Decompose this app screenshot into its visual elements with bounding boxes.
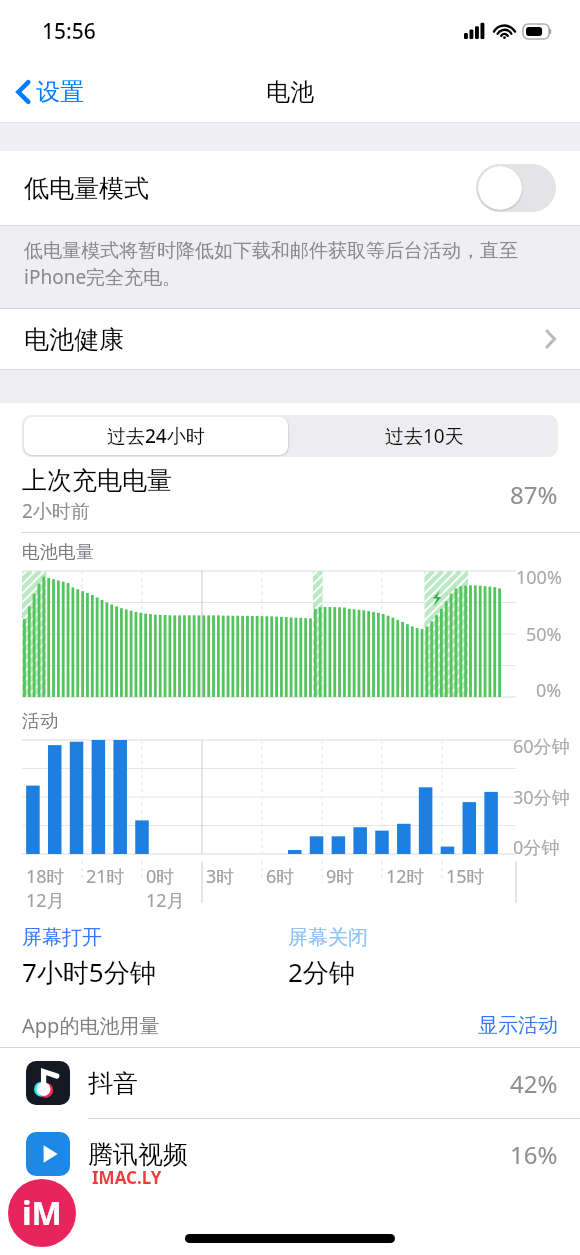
staticText: 上次充电电量 bbox=[22, 465, 172, 496]
button[interactable]: 低电量模式开关 bbox=[476, 164, 556, 212]
button[interactable]: 腾讯视频 bbox=[0, 1119, 580, 1189]
staticText: IMAC.LY bbox=[92, 1166, 162, 1189]
staticText: 6时 bbox=[266, 864, 295, 889]
staticText: 3时 bbox=[206, 864, 235, 889]
staticText: 60分钟 bbox=[513, 734, 570, 759]
staticText: 电池电量 bbox=[22, 541, 94, 564]
staticText: App的电池用量 bbox=[22, 1012, 478, 1039]
staticText: 电池 bbox=[266, 77, 314, 107]
staticText: 9时 bbox=[326, 864, 355, 889]
staticText: 12时 bbox=[386, 864, 425, 889]
staticText: 16% bbox=[510, 1138, 558, 1171]
staticText: 设置 bbox=[36, 77, 84, 107]
button[interactable]: 过去24小时 bbox=[24, 417, 288, 455]
button[interactable]: 设置 bbox=[0, 71, 96, 113]
button[interactable]: 显示活动 bbox=[478, 1013, 558, 1038]
staticText: 30分钟 bbox=[513, 785, 570, 810]
staticText: 18时 bbox=[26, 864, 65, 889]
staticText: 21时 bbox=[86, 864, 125, 889]
staticText: 87% bbox=[510, 478, 558, 511]
staticText: 过去24小时 bbox=[107, 423, 205, 449]
staticText: 12月15日 bbox=[146, 888, 202, 915]
staticText: 50% bbox=[526, 622, 562, 647]
button[interactable]: 过去10天 bbox=[290, 415, 558, 457]
staticText: 屏幕关闭 bbox=[288, 925, 368, 950]
staticText: 屏幕打开 bbox=[22, 925, 102, 950]
staticText: 腾讯视频 bbox=[88, 1139, 510, 1170]
staticText: 15时 bbox=[446, 864, 485, 889]
staticText: iM bbox=[22, 1191, 62, 1235]
staticText: 7小时5分钟 bbox=[22, 954, 156, 990]
staticText: 活动 bbox=[22, 710, 58, 733]
button[interactable]: 电池健康 bbox=[0, 309, 580, 369]
staticText: 低电量模式将暂时降低如下载和邮件获取等后台活动，直至 iPhone完全充电。 bbox=[24, 239, 518, 290]
staticText: 0时 bbox=[146, 864, 175, 889]
staticText: 电池健康 bbox=[24, 324, 545, 355]
staticText: 低电量模式 bbox=[24, 173, 476, 204]
staticText: 2分钟 bbox=[288, 954, 355, 990]
staticText: 显示活动 bbox=[478, 1013, 558, 1038]
staticText: 2小时前 bbox=[22, 498, 90, 524]
staticText: 0分钟 bbox=[513, 835, 560, 860]
staticText: 12月14日 bbox=[26, 888, 82, 915]
button[interactable]: 抖音 bbox=[0, 1048, 580, 1118]
staticText: 100% bbox=[516, 565, 562, 590]
staticText: 0% bbox=[536, 678, 562, 703]
staticText: 抖音 bbox=[88, 1068, 510, 1099]
staticText: 过去10天 bbox=[385, 423, 464, 449]
staticText: 15:56 bbox=[42, 17, 96, 46]
staticText: 42% bbox=[510, 1067, 558, 1100]
button[interactable]: 低电量模式 bbox=[0, 151, 580, 225]
